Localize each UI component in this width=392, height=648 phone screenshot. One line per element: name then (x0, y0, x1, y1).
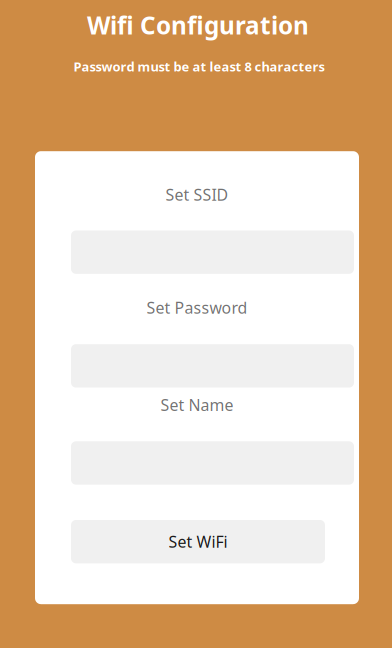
staticText: Set Password (146, 297, 247, 318)
staticText: Set WiFi (168, 531, 227, 552)
button[interactable]: Set WiFi (71, 520, 325, 563)
staticText: Set Name (160, 394, 233, 416)
staticText: Password must be at least 8 characters (73, 58, 324, 75)
staticText: Set SSID (165, 184, 228, 205)
staticText: Wifi Configuration (87, 8, 309, 42)
